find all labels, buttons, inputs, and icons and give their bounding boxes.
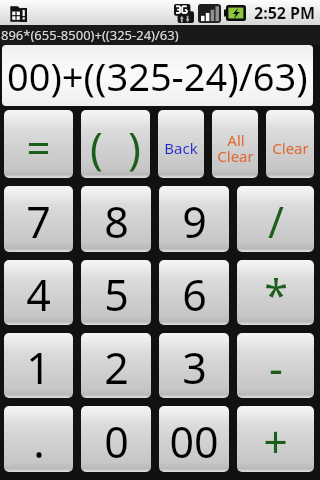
staticText: 00)+((325-24)/63) — [7, 50, 308, 102]
staticText: 00 — [169, 412, 219, 471]
staticText: Back — [164, 138, 198, 158]
button[interactable]: . — [4, 406, 73, 472]
staticText: 896*(655-8500)+((325-24)/63) — [1, 26, 179, 44]
button[interactable]: All — [212, 110, 258, 178]
staticText: + — [263, 412, 288, 471]
staticText: 4 — [26, 265, 51, 324]
button[interactable]: 4 — [4, 260, 73, 325]
button[interactable]: 1 — [4, 333, 73, 398]
staticText: 6 — [182, 265, 207, 324]
button[interactable]: + — [237, 406, 314, 472]
staticText: * — [264, 265, 288, 324]
staticText: 0 — [104, 412, 129, 471]
staticText: 8 — [104, 192, 129, 251]
button[interactable]: / — [237, 186, 314, 252]
button[interactable]: 0 — [81, 406, 151, 472]
button[interactable]: * — [237, 260, 314, 325]
button[interactable]: 3 — [159, 333, 229, 398]
staticText: 1 — [26, 338, 51, 397]
button[interactable]: 7 — [4, 186, 73, 252]
button[interactable]: Back — [158, 110, 204, 178]
button[interactable]: 00 — [159, 406, 229, 472]
staticText: 2:52 PM — [254, 2, 316, 24]
staticText: All — [227, 130, 245, 150]
staticText: . — [33, 412, 45, 471]
staticText: 9 — [182, 192, 207, 251]
button[interactable]: - — [237, 333, 314, 398]
button[interactable]: 6 — [159, 260, 229, 325]
staticText: 2 — [104, 338, 129, 397]
staticText: ( — [90, 118, 103, 177]
staticText: 5 — [104, 265, 129, 324]
button[interactable]: Parentheses — [81, 110, 150, 178]
staticText: 7 — [26, 192, 51, 251]
button[interactable]: 5 — [81, 260, 151, 325]
staticText: ) — [128, 118, 141, 177]
staticText: Clear — [272, 138, 309, 158]
button[interactable]: Equals — [4, 110, 73, 178]
staticText: = — [26, 118, 51, 175]
staticText: Clear — [217, 146, 254, 166]
staticText: / — [268, 192, 284, 251]
staticText: 3 — [182, 338, 207, 397]
button[interactable]: 9 — [159, 186, 229, 252]
button[interactable]: Clear — [266, 110, 314, 178]
staticText: - — [269, 338, 283, 397]
button[interactable]: 8 — [81, 186, 151, 252]
button[interactable]: 2 — [81, 333, 151, 398]
